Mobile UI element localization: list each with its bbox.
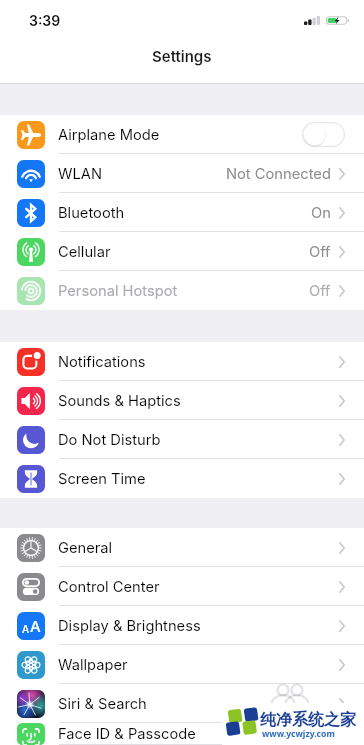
button[interactable]: Notifications bbox=[0, 342, 364, 381]
button[interactable]: Control Center bbox=[0, 567, 364, 606]
staticText: Do Not Disturb bbox=[58, 431, 161, 449]
staticText: Sounds & Haptics bbox=[58, 392, 181, 410]
staticText: Display & Brightness bbox=[58, 617, 201, 635]
staticText: On bbox=[311, 204, 331, 222]
staticText: Control Center bbox=[58, 578, 160, 596]
button[interactable]: WLAN bbox=[0, 154, 364, 193]
staticText: General bbox=[58, 539, 113, 557]
staticText: Siri & Search bbox=[58, 695, 147, 713]
staticText: WLAN bbox=[58, 165, 102, 183]
staticText: Personal Hotspot bbox=[58, 282, 178, 300]
staticText: Bluetooth bbox=[58, 204, 125, 222]
button[interactable]: A bbox=[0, 606, 364, 645]
button[interactable]: Cellular bbox=[0, 232, 364, 271]
staticText: Off bbox=[309, 282, 331, 300]
staticText: Off bbox=[309, 243, 331, 261]
button[interactable]: Wallpaper bbox=[0, 645, 364, 684]
staticText: Settings bbox=[152, 47, 212, 65]
staticText: Not Connected bbox=[226, 165, 331, 183]
staticText: Notifications bbox=[58, 353, 146, 371]
staticText: Screen Time bbox=[58, 470, 146, 488]
staticText: Face ID & Passcode bbox=[58, 725, 196, 743]
staticText: Cellular bbox=[58, 243, 111, 261]
staticText: 纯净系统之家 bbox=[260, 710, 356, 730]
button[interactable]: Bluetooth bbox=[0, 193, 364, 232]
staticText: A bbox=[30, 617, 41, 635]
button[interactable]: Do Not Disturb bbox=[0, 420, 364, 459]
button[interactable]: Personal Hotspot bbox=[0, 271, 364, 310]
staticText: www.ycwjzy.com bbox=[262, 728, 335, 740]
staticText: 3:39 bbox=[29, 12, 61, 29]
button[interactable]: Sounds & Haptics bbox=[0, 381, 364, 420]
button[interactable]: Airplane Mode bbox=[0, 115, 364, 154]
button[interactable]: Siri & Search bbox=[0, 684, 364, 723]
button[interactable]: General bbox=[0, 528, 364, 567]
staticText: Wallpaper bbox=[58, 656, 128, 674]
button[interactable]: Face ID & Passcode bbox=[0, 723, 364, 745]
button[interactable]: Screen Time bbox=[0, 459, 364, 498]
staticText: Airplane Mode bbox=[58, 126, 160, 144]
staticText: A bbox=[22, 623, 30, 635]
